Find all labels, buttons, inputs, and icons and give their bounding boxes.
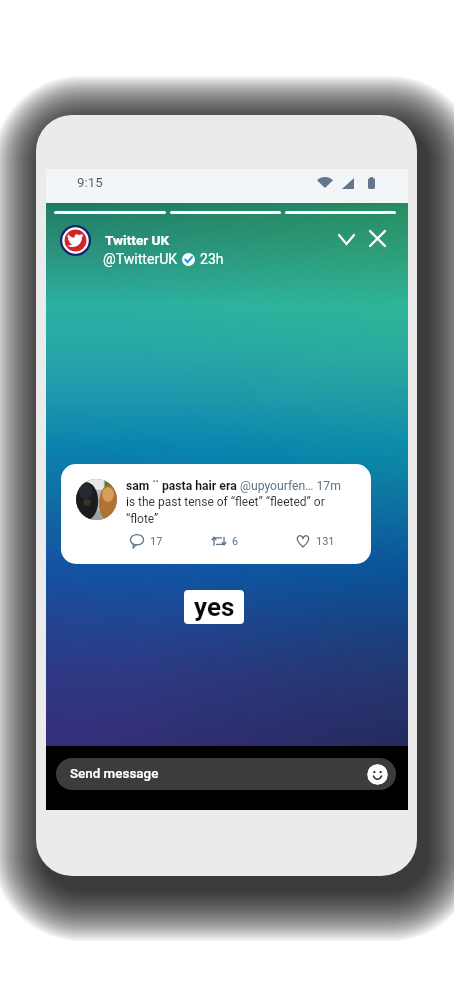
button[interactable]: Collapse: [331, 224, 361, 254]
staticText: 23h: [200, 251, 224, 268]
button[interactable]: sam ˙˙ pasta hair era: [61, 464, 371, 564]
staticText: @upyourfen… 17m: [240, 479, 341, 493]
staticText: 6: [232, 535, 239, 548]
staticText: yes: [194, 592, 235, 622]
button[interactable]: Close: [362, 223, 392, 253]
button[interactable]: Send message: [56, 758, 396, 790]
staticText: is the past tense of “fleet” “fleeted” o…: [126, 495, 336, 526]
staticText: Send message: [70, 766, 159, 782]
button[interactable]: yes: [184, 590, 244, 624]
staticText: 9:15: [77, 175, 103, 191]
button[interactable]: Emoji: [367, 764, 388, 785]
staticText: sam ˙˙ pasta hair era: [126, 479, 237, 493]
staticText: Twitter UK: [105, 232, 170, 248]
staticText: 17: [150, 535, 163, 548]
staticText: @TwitterUK: [103, 251, 178, 268]
staticText: 131: [316, 535, 335, 548]
